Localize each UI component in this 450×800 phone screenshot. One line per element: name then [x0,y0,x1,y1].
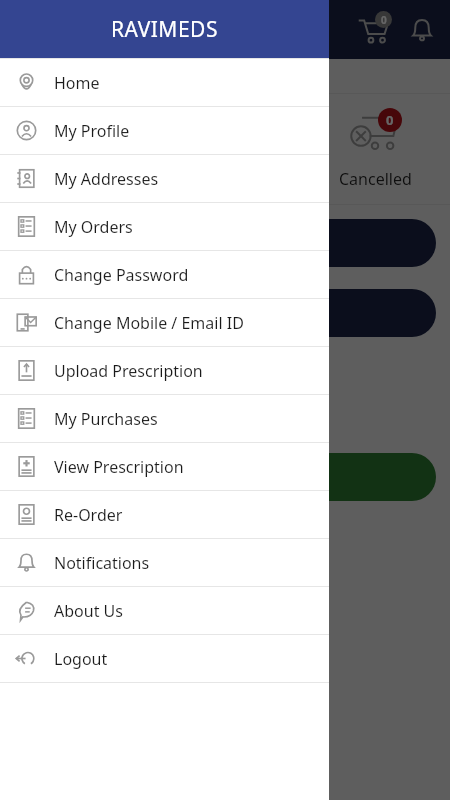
button[interactable]: About Us [0,587,329,634]
button[interactable]: Change Password [0,251,329,298]
staticText: My Purchases [54,408,158,430]
button[interactable]: Home [0,59,329,106]
staticText: Logout [54,648,108,670]
button[interactable]: Search Medicine [14,219,436,267]
button[interactable]: Logout [0,635,329,682]
staticText: Upload Prescription [54,360,203,382]
button[interactable]: Re-Order [0,491,329,538]
staticText: My Profile [54,120,130,142]
button[interactable]: Notifications [408,16,436,44]
button[interactable]: Place Order [14,453,436,501]
button[interactable]: Voice search [195,390,255,450]
button[interactable]: My Addresses [0,155,329,202]
staticText: Place Order [178,466,272,489]
staticText: About Us [54,600,123,622]
staticText: Change Mobile / Email ID [54,312,244,334]
button[interactable]: My Orders [0,203,329,250]
staticText: My Orders [54,216,133,238]
staticText: View Prescription [54,456,184,478]
button[interactable]: My Purchases [0,395,329,442]
staticText: Prescription [177,302,274,325]
button[interactable]: Upload Prescription [0,347,329,394]
staticText: 0 [386,111,394,129]
staticText: Cancelled [339,168,412,190]
button[interactable]: Notifications [0,539,329,586]
button[interactable]: Prescription [14,289,436,337]
staticText: Home [54,72,100,94]
button[interactable]: Cart [356,13,390,47]
staticText: Notifications [54,552,150,574]
staticText: Search Medicine [160,232,291,255]
staticText: Change Password [54,264,189,286]
button[interactable]: View Prescription [0,443,329,490]
staticText: Re-Order [54,504,123,526]
button[interactable]: Change Mobile / Email ID [0,299,329,346]
staticText: RAVIMEDS [111,15,218,44]
button[interactable]: My Profile [0,107,329,154]
staticText: My Addresses [54,168,159,190]
staticText: 0 [381,13,387,27]
